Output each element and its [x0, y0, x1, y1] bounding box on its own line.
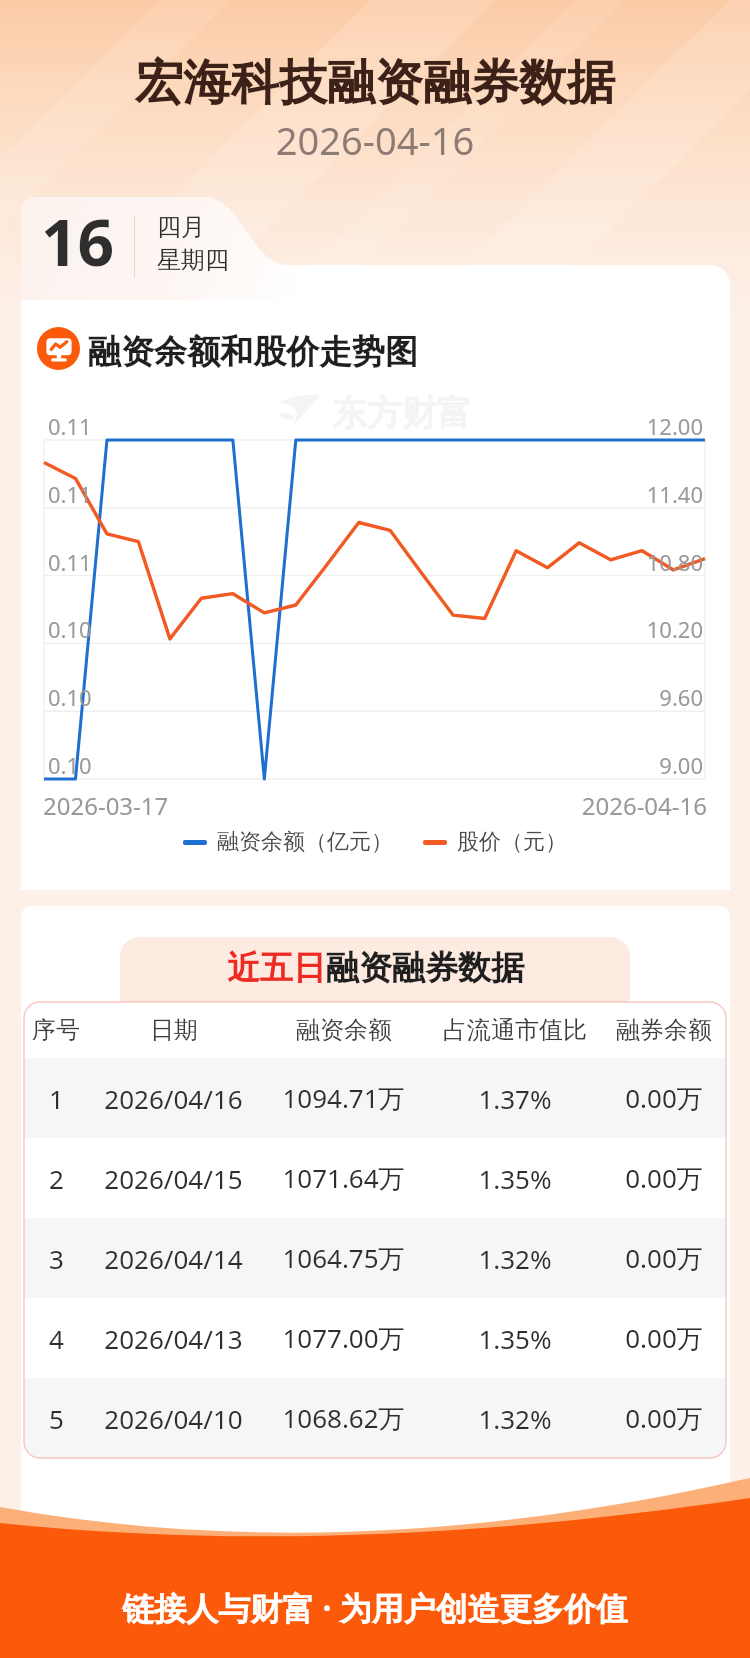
staticText: 3 — [49, 1241, 64, 1276]
staticText: 2026/04/10 — [104, 1401, 243, 1436]
staticText: 1.37% — [478, 1081, 552, 1116]
staticText: 1 — [49, 1081, 64, 1116]
staticText: 星期四 — [157, 245, 229, 275]
staticText: 2026/04/13 — [104, 1321, 243, 1356]
staticText: 0.00万 — [625, 1320, 703, 1356]
staticText: 2026-04-16 — [0, 114, 750, 166]
button[interactable]: 1 — [24, 1058, 726, 1138]
staticText: 股价（元） — [457, 828, 567, 856]
staticText: 2026/04/15 — [104, 1161, 243, 1196]
staticText: 1077.00万 — [282, 1320, 405, 1356]
staticText: 宏海科技融资融券数据 — [0, 53, 750, 113]
staticText: 占流通市值比 — [443, 1015, 587, 1045]
staticText: 1.35% — [478, 1321, 552, 1356]
staticText: 1094.71万 — [282, 1080, 405, 1116]
staticText: 9.00 — [0, 750, 703, 780]
staticText: 近五日 — [227, 947, 326, 989]
staticText: 2026/04/14 — [104, 1241, 243, 1276]
staticText: 融资融券数据 — [326, 947, 524, 989]
staticText: 东方财富 — [332, 391, 472, 435]
staticText: 12.00 — [0, 411, 703, 441]
staticText: 链接人与财富 · 为用户创造更多价值 — [0, 1586, 750, 1630]
staticText: 9.60 — [0, 682, 703, 712]
staticText: 东方财富 — [334, 1221, 474, 1265]
staticText: 2026/04/16 — [104, 1081, 243, 1116]
staticText: 1071.64万 — [282, 1160, 405, 1196]
staticText: 10.20 — [0, 614, 703, 644]
button[interactable]: 4 — [24, 1298, 726, 1378]
staticText: 四月 — [157, 212, 205, 242]
staticText: 0.00万 — [625, 1160, 703, 1196]
staticText: 融券余额 — [616, 1015, 712, 1045]
staticText: 1.35% — [478, 1161, 552, 1196]
staticText: 1068.62万 — [282, 1400, 405, 1436]
staticText: 10.80 — [0, 547, 703, 577]
button[interactable]: 3 — [24, 1218, 726, 1298]
staticText: 融资余额和股价走势图 — [88, 331, 418, 373]
staticText: 0.11 — [48, 479, 92, 509]
staticText: 0.00万 — [625, 1400, 703, 1436]
staticText: 0.11 — [48, 547, 92, 577]
staticText: 4 — [49, 1321, 64, 1356]
staticText: 16 — [41, 198, 115, 285]
staticText: 0.10 — [48, 750, 92, 780]
button[interactable]: 序号 — [24, 1002, 726, 1058]
staticText: 日期 — [150, 1015, 198, 1045]
staticText: 1.32% — [478, 1401, 552, 1436]
staticText: 2026-04-16 — [0, 789, 707, 822]
button[interactable]: 5 — [24, 1378, 726, 1458]
button[interactable]: 2 — [24, 1138, 726, 1218]
staticText: 0.11 — [48, 411, 92, 441]
staticText: 融资余额（亿元） — [217, 828, 393, 856]
staticText: 5 — [49, 1401, 64, 1436]
staticText: 2 — [49, 1161, 64, 1196]
staticText: 0.00万 — [625, 1240, 703, 1276]
staticText: 0.10 — [48, 614, 92, 644]
staticText: 0.00万 — [625, 1080, 703, 1116]
staticText: 0.10 — [48, 682, 92, 712]
staticText: 融资余额 — [296, 1015, 392, 1045]
button[interactable]: 融资余额和股价走势图 — [37, 327, 80, 370]
staticText: 1.32% — [478, 1241, 552, 1276]
staticText: 1064.75万 — [282, 1240, 405, 1276]
staticText: 2026-03-17 — [43, 789, 169, 822]
staticText: 11.40 — [0, 479, 703, 509]
staticText: 序号 — [32, 1015, 80, 1045]
